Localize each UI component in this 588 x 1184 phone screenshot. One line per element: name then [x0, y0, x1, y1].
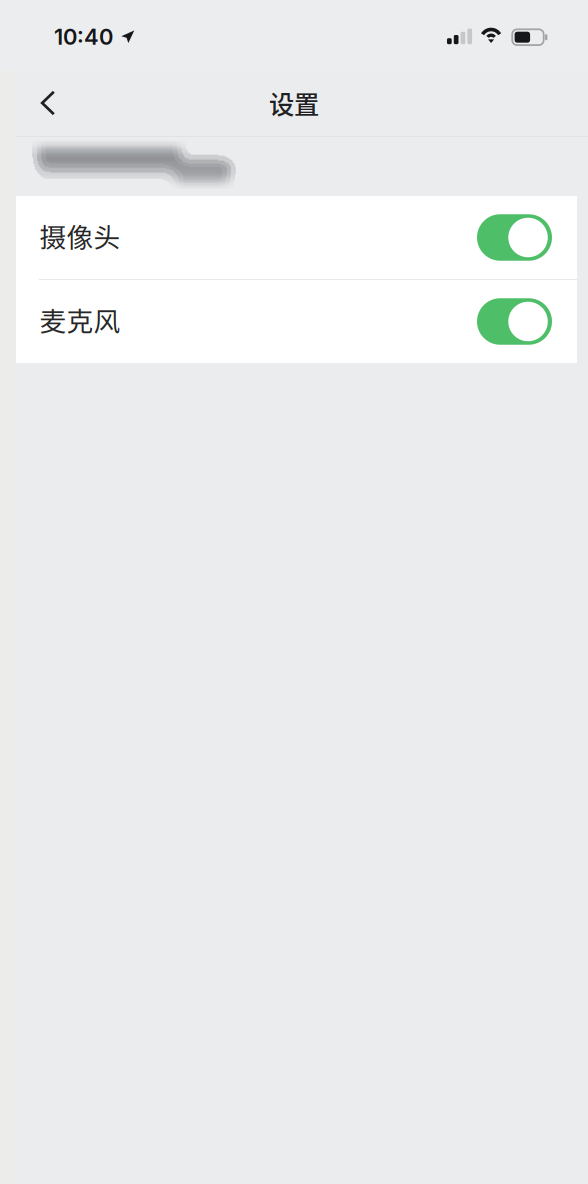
staticText: 摄像头: [39, 216, 120, 255]
button[interactable]: 麦克风: [16, 280, 577, 363]
staticText: 10:40: [54, 23, 113, 50]
staticText: 麦克风: [39, 300, 120, 339]
button[interactable]: Back: [16, 71, 80, 135]
staticText: 设置: [269, 85, 319, 121]
button[interactable]: 摄像头: [16, 196, 577, 279]
